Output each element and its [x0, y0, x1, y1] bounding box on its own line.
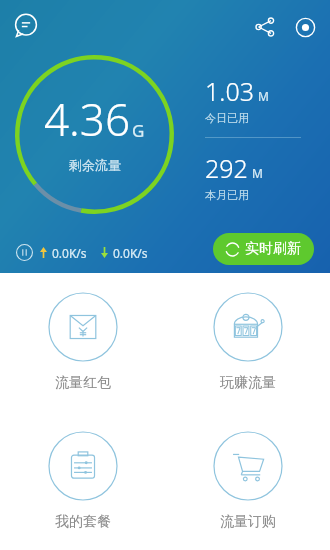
button[interactable]: Share: [248, 10, 282, 44]
staticText: G: [132, 119, 145, 142]
button[interactable]: Messages: [10, 10, 42, 42]
staticText: M: [252, 165, 263, 181]
staticText: 4.36: [44, 89, 131, 149]
button[interactable]: 流量红包: [0, 273, 165, 411]
staticText: 实时刷新: [245, 240, 301, 258]
staticText: 1.03: [205, 74, 254, 108]
button[interactable]: 我的套餐: [0, 411, 165, 550]
staticText: M: [258, 88, 269, 104]
staticText: 流量订购: [220, 513, 276, 531]
staticText: 0.0K/s: [52, 245, 87, 261]
button[interactable]: 流量订购: [165, 411, 330, 550]
button[interactable]: 玩赚流量: [165, 273, 330, 411]
button[interactable]: 实时刷新: [213, 233, 314, 265]
staticText: 剩余流量: [69, 157, 121, 173]
staticText: 本月已用: [205, 188, 249, 202]
button[interactable]: 4.36: [13, 53, 176, 216]
staticText: 玩赚流量: [220, 374, 276, 392]
staticText: 我的套餐: [55, 513, 111, 531]
staticText: 今日已用: [205, 111, 249, 125]
button[interactable]: Pause: [16, 244, 33, 261]
button[interactable]: Settings: [288, 10, 322, 44]
staticText: 流量红包: [55, 374, 111, 392]
staticText: 292: [205, 151, 248, 185]
staticText: 0.0K/s: [113, 245, 148, 261]
